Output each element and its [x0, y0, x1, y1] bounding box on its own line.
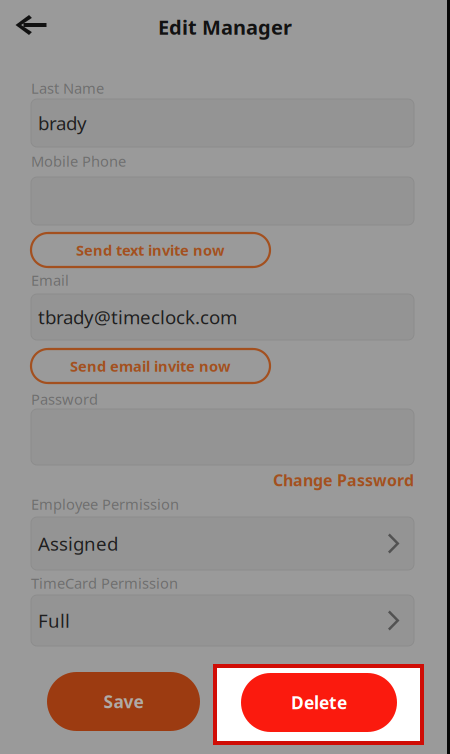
staticText: Send email invite now — [70, 356, 231, 376]
staticText: Email — [31, 270, 69, 290]
staticText: Employee Permission — [31, 494, 179, 514]
staticText: Send text invite now — [76, 240, 225, 260]
button[interactable]: Send text invite now — [31, 233, 270, 267]
button[interactable]: Back — [2, 3, 60, 47]
staticText: tbrady@timeclock.com — [38, 305, 237, 329]
staticText: Delete — [291, 691, 347, 714]
button[interactable]: Full — [31, 595, 414, 646]
staticText: Last Name — [31, 78, 104, 98]
staticText: Full — [38, 608, 70, 633]
button[interactable]: Send email invite now — [31, 349, 270, 383]
button[interactable]: Delete — [241, 673, 397, 732]
staticText: Password — [31, 389, 98, 409]
staticText: Change Password — [273, 469, 414, 491]
staticText: Save — [103, 690, 143, 713]
button[interactable]: Assigned — [31, 517, 414, 570]
staticText: brady — [38, 111, 87, 135]
staticText: Edit Manager — [158, 14, 292, 40]
button[interactable]: Save — [47, 672, 200, 731]
staticText: Assigned — [38, 531, 118, 556]
staticText: Mobile Phone — [31, 151, 126, 171]
staticText: TimeCard Permission — [31, 573, 178, 593]
button[interactable]: Change Password — [31, 469, 414, 491]
